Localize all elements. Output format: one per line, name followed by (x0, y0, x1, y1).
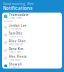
staticText: Sent a note (9, 51, 21, 53)
staticText: Liked update (9, 58, 21, 61)
staticText: Dana Kim (9, 47, 23, 51)
staticText: 42 earlier (9, 66, 20, 69)
staticText: Shared a file (9, 35, 23, 38)
staticText: Notifications (3, 6, 32, 11)
staticText: Team update (9, 13, 29, 17)
staticText: Mentioned you (9, 43, 23, 46)
staticText: Jordan Lee (9, 24, 27, 27)
staticText: EARLIER (4, 20, 12, 23)
staticText: Show all (9, 63, 22, 66)
button[interactable]: Jordan Lee (2, 23, 62, 31)
staticText: Riley Chen (9, 39, 26, 43)
button[interactable]: Alex Rivera (2, 54, 62, 62)
button[interactable]: Team update (2, 13, 62, 20)
button[interactable]: Dana Kim (2, 46, 62, 54)
staticText: Good morning, Alex (3, 2, 34, 6)
button[interactable]: Riley Chen (2, 39, 62, 46)
button[interactable]: Show all (2, 62, 62, 70)
staticText: 3 new items (9, 17, 22, 20)
staticText: Alex Rivera (9, 55, 27, 58)
staticText: Commented (9, 27, 21, 30)
staticText: Sam Ortiz (9, 32, 23, 35)
button[interactable]: Sam Ortiz (2, 31, 62, 39)
